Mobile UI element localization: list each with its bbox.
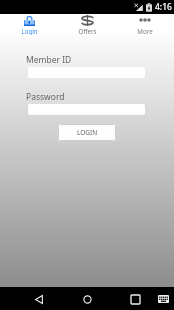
staticText: LOGIN	[77, 128, 98, 137]
staticText: Password	[26, 91, 65, 103]
button[interactable]: Home	[76, 288, 98, 310]
button[interactable]: Back	[28, 288, 50, 310]
staticText: 4:16	[155, 1, 172, 13]
staticText: More	[137, 27, 153, 35]
button[interactable]: More	[116, 14, 174, 35]
staticText: Member ID	[26, 54, 72, 66]
button[interactable]: Offers	[58, 14, 116, 35]
button[interactable]: LOGIN	[58, 124, 116, 141]
button[interactable]: Login	[0, 14, 58, 35]
staticText: Offers	[78, 27, 97, 35]
button[interactable]: Recent apps	[124, 288, 146, 310]
staticText: Login	[21, 27, 38, 35]
button[interactable]: Keyboard	[152, 288, 174, 310]
